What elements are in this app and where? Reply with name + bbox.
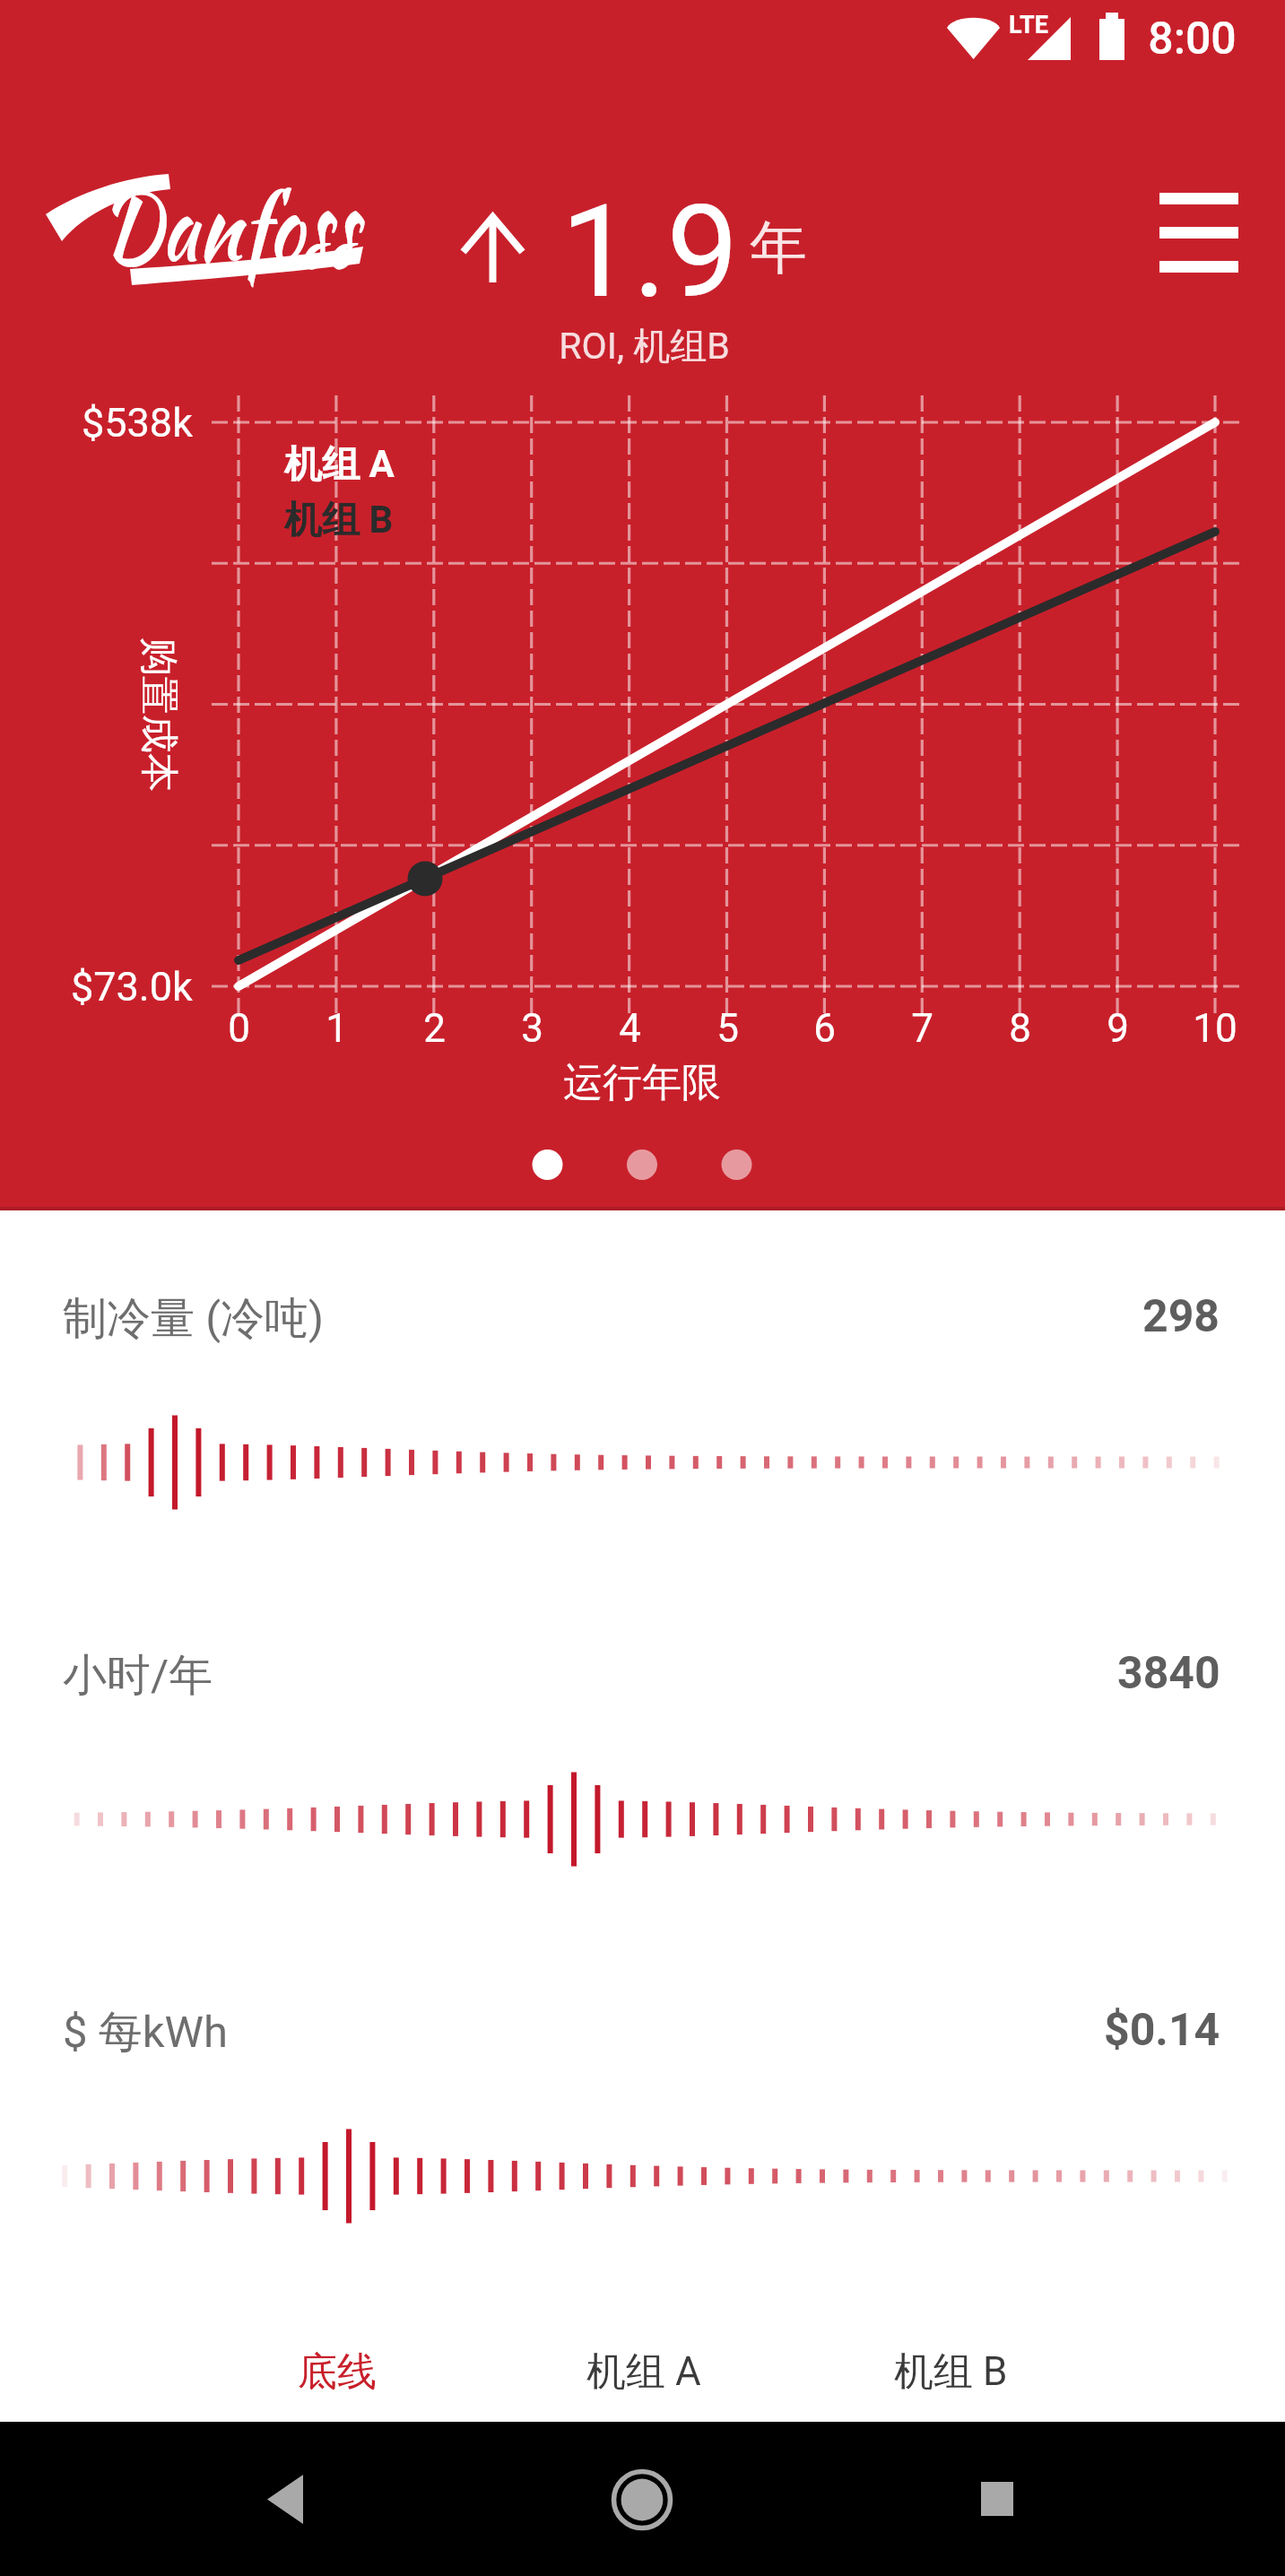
staticText: 2 xyxy=(423,1005,446,1052)
staticText: 小时/年 xyxy=(63,1648,213,1704)
staticText: 8:00 xyxy=(1148,13,1237,65)
staticText: LTE xyxy=(1009,11,1048,39)
staticText: $0.14 xyxy=(1104,2004,1220,2057)
staticText: ROI, 机组B xyxy=(559,324,730,370)
staticText: 1 xyxy=(326,1005,348,1052)
button[interactable]: $ 每kWh xyxy=(0,2086,1285,2266)
staticText: $73.0k xyxy=(71,963,193,1010)
staticText: 5 xyxy=(716,1005,739,1052)
staticText: 3 xyxy=(521,1005,543,1052)
button[interactable]: 机组 B xyxy=(797,2309,1104,2434)
staticText: 机组 A xyxy=(586,2347,701,2397)
staticText: 底线 xyxy=(298,2347,377,2397)
staticText: 8 xyxy=(1009,1005,1031,1052)
button[interactable]: 制冷量 (冷吨) xyxy=(0,1373,1285,1552)
staticText: $ 每kWh xyxy=(63,2005,228,2060)
staticText: 机组 B xyxy=(284,497,394,544)
staticText: 9 xyxy=(1107,1005,1129,1052)
staticText: 年 xyxy=(750,212,807,284)
staticText: 1.9 xyxy=(560,177,739,327)
staticText: 298 xyxy=(1142,1290,1220,1343)
staticText: 10 xyxy=(1193,1005,1237,1052)
staticText: 机组 A xyxy=(284,441,395,489)
staticText: Danfoss xyxy=(100,158,357,296)
staticText: $538k xyxy=(82,399,193,447)
staticText: 运行年限 xyxy=(563,1058,721,1107)
staticText: 3840 xyxy=(1117,1647,1220,1700)
button[interactable]: 小时/年 xyxy=(0,1730,1285,1909)
button[interactable]: Home xyxy=(579,2437,705,2563)
staticText: 购置成本 xyxy=(135,637,183,792)
button[interactable]: 底线 xyxy=(184,2309,491,2434)
staticText: 0 xyxy=(228,1005,250,1052)
button[interactable]: Back xyxy=(222,2437,348,2563)
staticText: 机组 B xyxy=(894,2347,1008,2397)
button[interactable]: Danfoss xyxy=(40,157,372,309)
staticText: 6 xyxy=(813,1005,836,1052)
staticText: 7 xyxy=(911,1005,933,1052)
button[interactable]: 机组 A xyxy=(491,2309,797,2434)
button[interactable]: Menu xyxy=(1124,157,1267,300)
button[interactable]: Recents xyxy=(934,2437,1060,2563)
staticText: 制冷量 (冷吨) xyxy=(63,1291,324,1347)
staticText: 4 xyxy=(619,1005,641,1052)
